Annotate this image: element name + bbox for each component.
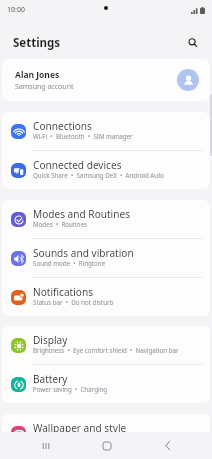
staticText: Status bar • Do not disturb [33,298,114,307]
staticText: Quick Share • Samsung DeX • Android Auto [33,171,165,180]
button[interactable]: Connected devices [2,151,210,189]
staticText: Modes and Routines [33,209,130,220]
staticText: 10:00 [7,5,25,15]
button[interactable]: Modes and Routines [2,200,210,238]
staticText: Samsung account [15,82,74,92]
staticText: Sounds and vibration [33,248,134,259]
staticText: Wallpaper • Themes • Icons [33,434,119,443]
button[interactable]: Home [89,432,124,459]
staticText: Brightness • Eye comfort shield • Naviga… [33,346,179,355]
staticText: Battery [33,374,68,385]
staticText: Wallpaper and style [33,423,127,434]
button[interactable]: Notifications [2,278,210,316]
staticText: Notifications [33,287,94,298]
staticText: Power saving • Charging [33,385,108,394]
button[interactable]: Alan Jones [2,59,210,101]
staticText: Wi-Fi • Bluetooth • SIM manager [33,132,133,141]
staticText: Modes • Routines [33,220,87,229]
staticText: Connections [33,121,92,132]
button[interactable]: Wallpaper and style [2,414,210,452]
staticText: Alan Jones [15,69,60,81]
staticText: Settings [13,35,61,51]
button[interactable]: Connections [2,112,210,150]
staticText: Sound mode • Ringtone [33,259,106,268]
staticText: Display [33,335,68,346]
button[interactable]: Battery [2,365,210,403]
button[interactable]: Sounds and vibration [2,239,210,277]
button[interactable]: Search [182,32,204,54]
button[interactable]: Display [2,326,210,364]
button[interactable]: Recents [28,432,63,459]
button[interactable]: Back [150,432,185,459]
staticText: Connected devices [33,160,122,171]
